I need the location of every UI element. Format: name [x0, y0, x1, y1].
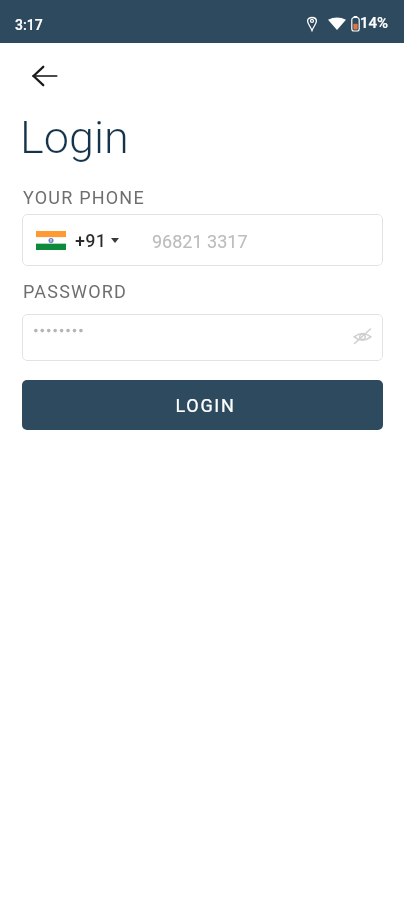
button[interactable]: Select country code [36, 230, 119, 251]
button[interactable]: Show password [347, 321, 377, 351]
button[interactable]: LOGIN [22, 380, 383, 430]
staticText: 14% [360, 14, 389, 32]
button[interactable]: Back [22, 54, 66, 98]
staticText: +91 [75, 230, 107, 251]
staticText: PASSWORD [23, 281, 128, 302]
button[interactable]: Select country code [22, 214, 383, 266]
staticText: Login [20, 111, 129, 164]
staticText: LOGIN [175, 395, 236, 416]
staticText: 96821 3317 [152, 231, 248, 252]
staticText: 3:17 [15, 17, 43, 33]
staticText: YOUR PHONE [23, 187, 145, 208]
button[interactable]: Show password [22, 314, 383, 361]
